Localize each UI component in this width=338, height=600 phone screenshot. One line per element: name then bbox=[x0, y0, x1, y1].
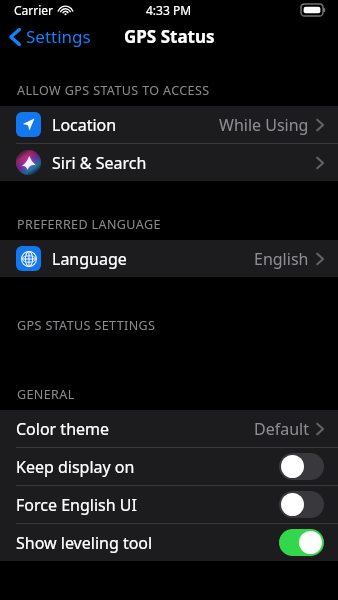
staticText: Color theme bbox=[16, 418, 110, 440]
staticText: Language bbox=[52, 248, 127, 270]
staticText: Show leveling tool bbox=[16, 532, 153, 554]
button[interactable]: Keep display on bbox=[0, 448, 338, 486]
button[interactable]: Settings bbox=[0, 21, 99, 52]
button[interactable]: Location bbox=[0, 106, 338, 144]
staticText: ALLOW GPS STATUS TO ACCESS bbox=[17, 82, 210, 99]
button[interactable]: Toggle off bbox=[279, 453, 324, 480]
button[interactable]: Siri & Search bbox=[0, 144, 338, 181]
staticText: Default bbox=[254, 418, 309, 440]
staticText: GENERAL bbox=[17, 386, 75, 403]
staticText: Siri & Search bbox=[52, 152, 147, 174]
button[interactable]: Color theme bbox=[0, 410, 338, 448]
button[interactable]: Toggle off bbox=[279, 491, 324, 518]
staticText: Force English UI bbox=[16, 494, 137, 516]
staticText: Carrier bbox=[14, 2, 54, 18]
staticText: 4:33 PM bbox=[146, 2, 192, 18]
staticText: English bbox=[254, 248, 309, 270]
staticText: PREFERRED LANGUAGE bbox=[17, 216, 161, 233]
staticText: While Using bbox=[219, 114, 309, 136]
staticText: GPS Status bbox=[124, 25, 215, 48]
staticText: Settings bbox=[26, 25, 91, 48]
button[interactable]: Show leveling tool bbox=[0, 524, 338, 561]
button[interactable]: Language bbox=[0, 240, 338, 277]
staticText: Keep display on bbox=[16, 456, 135, 478]
button[interactable]: Toggle on bbox=[279, 529, 324, 556]
staticText: GPS STATUS SETTINGS bbox=[17, 317, 156, 334]
button[interactable]: Force English UI bbox=[0, 486, 338, 524]
staticText: Location bbox=[52, 114, 117, 136]
